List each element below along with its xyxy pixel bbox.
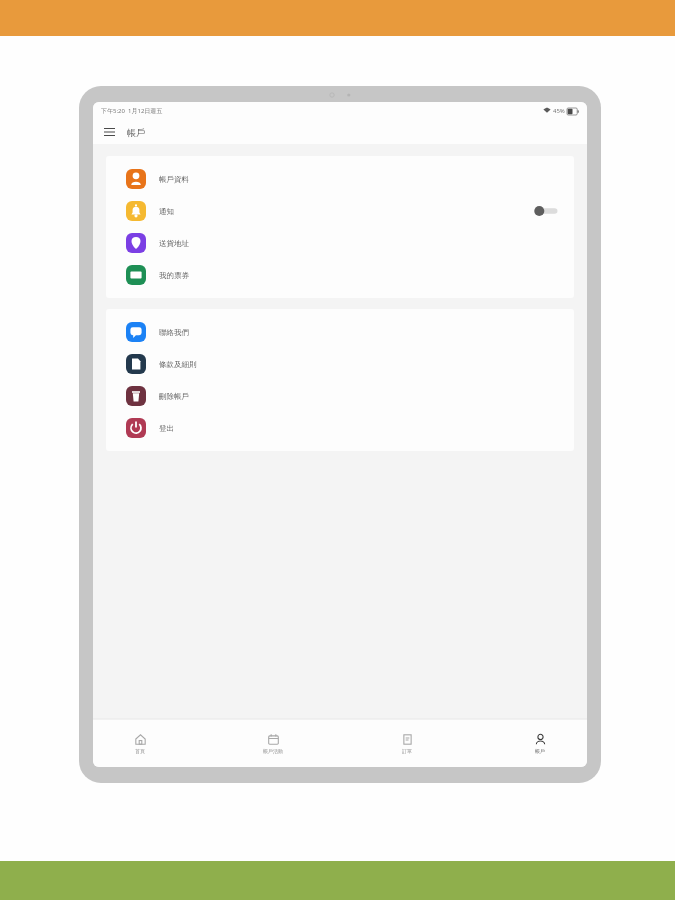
staticText: 我的票券 — [159, 271, 189, 280]
staticText: 通知 — [159, 207, 174, 216]
button[interactable]: 刪除帳戶 — [106, 380, 574, 412]
staticText: 條款及細則 — [159, 360, 197, 369]
button[interactable]: 送貨地址 — [106, 227, 574, 259]
button[interactable]: 通知 — [106, 195, 574, 227]
staticText: 訂單 — [402, 748, 412, 754]
staticText: 聯絡我們 — [159, 328, 189, 337]
staticText: 刪除帳戶 — [159, 392, 189, 401]
staticText: 帳戶 — [535, 748, 545, 754]
button[interactable]: 帳戶活動 — [238, 730, 308, 757]
staticText: 帳戶活動 — [263, 748, 283, 754]
button[interactable]: 登出 — [106, 412, 574, 444]
staticText: 首頁 — [135, 748, 145, 754]
staticText: 帳戶資料 — [159, 175, 189, 184]
button[interactable]: 條款及細則 — [106, 348, 574, 380]
button[interactable]: 首頁 — [105, 730, 175, 757]
staticText: 下午5:20 1月12日週五 — [101, 107, 163, 115]
button[interactable]: 訂單 — [372, 730, 442, 757]
staticText: 登出 — [159, 424, 174, 433]
staticText: 帳戶 — [127, 127, 145, 138]
button[interactable]: Menu — [101, 124, 117, 140]
button[interactable]: 我的票券 — [106, 259, 574, 291]
button[interactable]: 聯絡我們 — [106, 316, 574, 348]
staticText: 45% — [553, 107, 565, 115]
button[interactable]: 帳戶資料 — [106, 163, 574, 195]
button[interactable]: 帳戶 — [505, 730, 575, 757]
staticText: 送貨地址 — [159, 239, 189, 248]
